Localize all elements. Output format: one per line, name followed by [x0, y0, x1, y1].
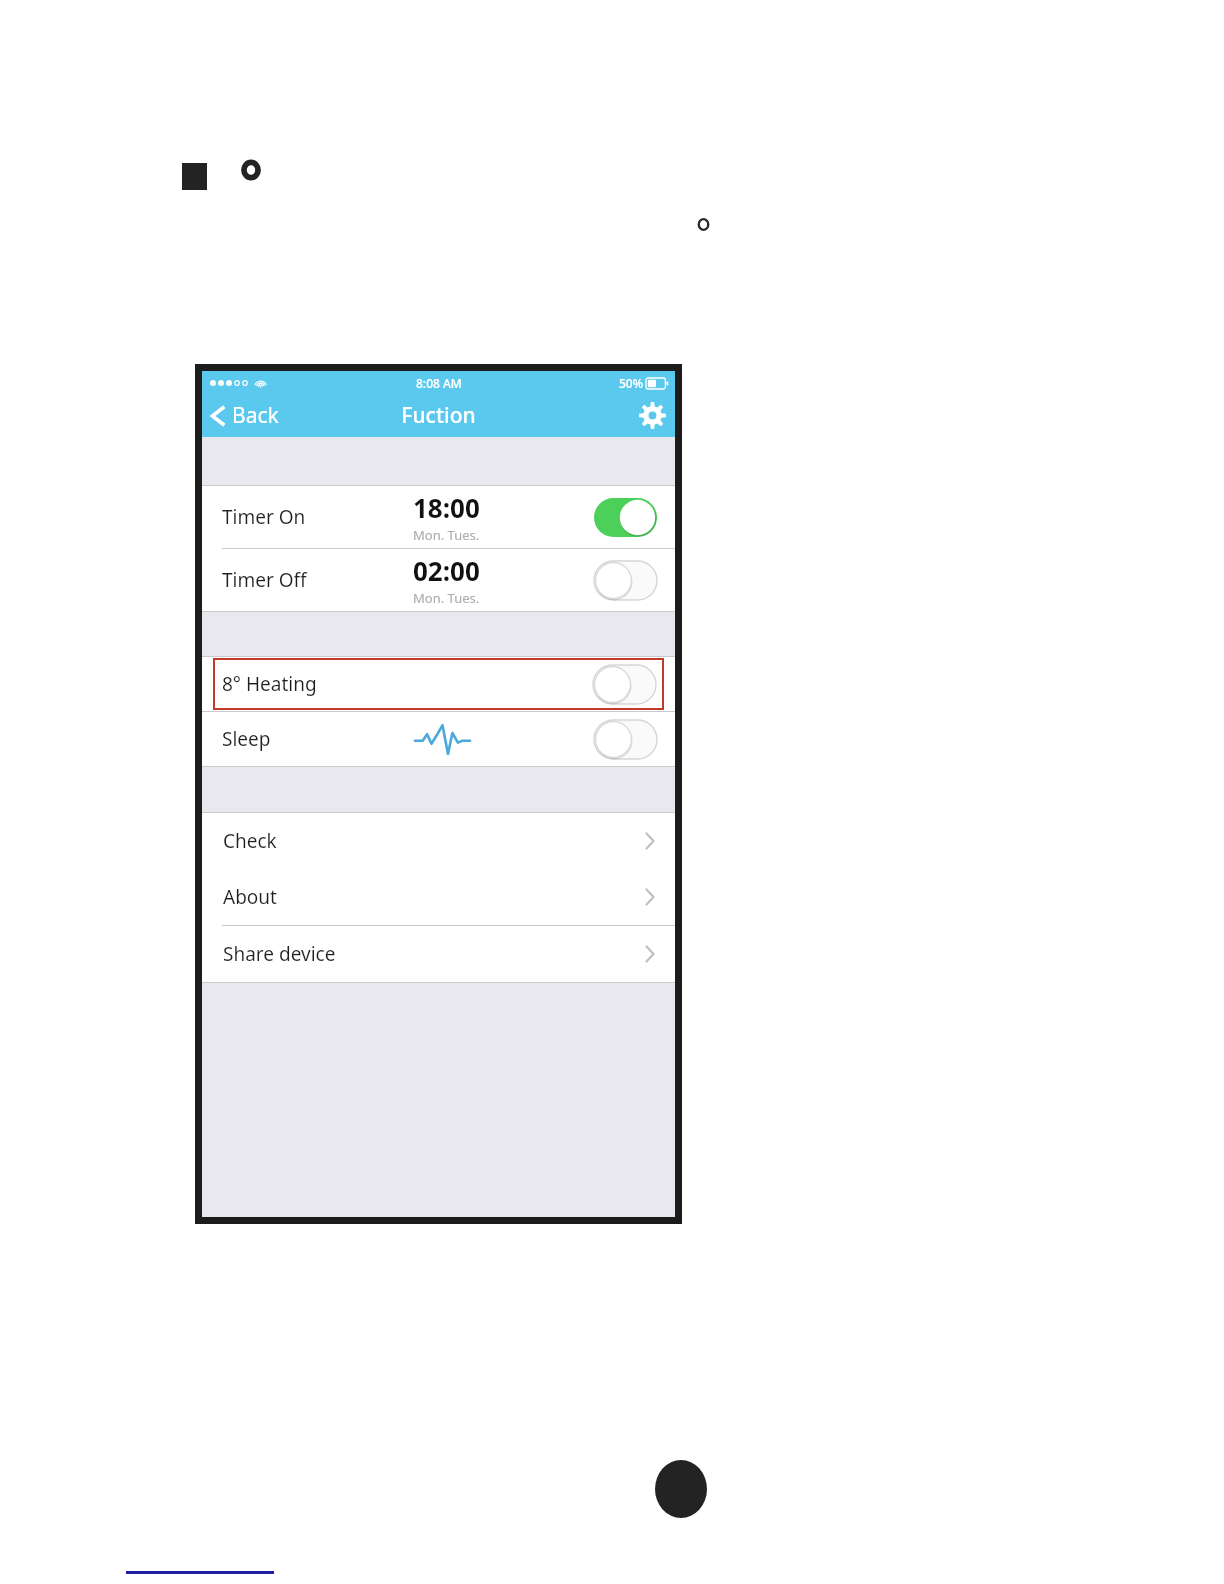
staticText: Fuction [401, 401, 476, 430]
staticText: 18:00 [413, 490, 480, 525]
staticText: Mon. Tues. [413, 589, 480, 607]
staticText: 02:00 [413, 553, 480, 588]
staticText: 8:08 AM [416, 375, 462, 391]
button[interactable]: Sleep [202, 712, 675, 766]
button[interactable]: Settings [630, 396, 675, 435]
button[interactable]: Timer Off [202, 549, 675, 611]
staticText: Timer On [222, 504, 306, 530]
staticText: Share device [223, 941, 336, 967]
staticText: Timer Off [222, 567, 307, 593]
staticText: 8° Heating [222, 671, 317, 697]
button[interactable]: 8° Heating [213, 658, 664, 710]
button[interactable]: Check [202, 813, 675, 869]
staticText: Sleep [222, 726, 271, 752]
staticText: Mon. Tues. [413, 526, 480, 544]
button[interactable]: Timer On [202, 486, 675, 548]
staticText: 50% [619, 375, 643, 391]
button[interactable]: Back [202, 397, 289, 434]
staticText: Check [223, 828, 277, 854]
staticText: About [223, 884, 277, 910]
button[interactable]: Share device [202, 926, 675, 982]
staticText: Back [232, 401, 279, 430]
button[interactable]: About [202, 869, 675, 925]
